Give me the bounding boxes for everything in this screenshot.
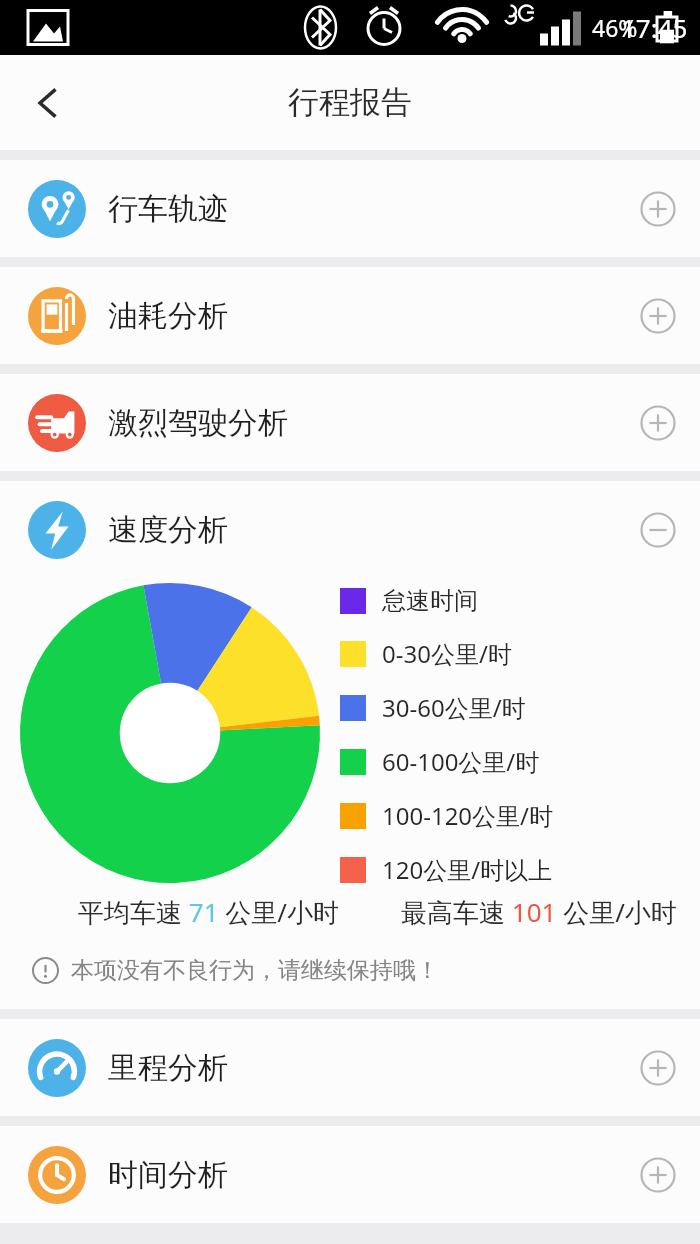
other: Expand bbox=[640, 298, 676, 334]
button[interactable]: 速度分析 bbox=[0, 481, 700, 578]
button[interactable]: 里程分析 bbox=[0, 1019, 700, 1116]
other: Expand bbox=[640, 191, 676, 227]
staticText: 里程分析 bbox=[108, 1049, 228, 1087]
staticText: 行程报告 bbox=[288, 83, 412, 122]
staticText: 平均车速 71 公里/小时 bbox=[78, 894, 339, 930]
staticText: 46% bbox=[592, 12, 638, 43]
button[interactable]: 激烈驾驶分析 bbox=[0, 374, 700, 471]
button[interactable]: Back bbox=[14, 68, 84, 138]
button[interactable]: 行车轨迹 bbox=[0, 160, 700, 257]
other: Collapse bbox=[640, 512, 676, 548]
staticText: 100-120公里/时 bbox=[382, 799, 554, 832]
staticText: 怠速时间 bbox=[382, 586, 478, 616]
staticText: 本项没有不良行为，请继续保持哦！ bbox=[71, 956, 439, 985]
staticText: 速度分析 bbox=[108, 511, 228, 549]
other: Expand bbox=[640, 1050, 676, 1086]
staticText: 时间分析 bbox=[108, 1156, 228, 1194]
staticText: 60-100公里/时 bbox=[382, 745, 540, 778]
staticText: 120公里/时以上 bbox=[382, 853, 553, 886]
staticText: 油耗分析 bbox=[108, 297, 228, 335]
staticText: 30-60公里/时 bbox=[382, 691, 526, 724]
staticText: 最高车速 101 公里/小时 bbox=[401, 894, 677, 930]
button[interactable]: 时间分析 bbox=[0, 1126, 700, 1223]
staticText: 0-30公里/时 bbox=[382, 637, 512, 670]
staticText: 17:45 bbox=[621, 10, 688, 45]
staticText: 行车轨迹 bbox=[108, 190, 228, 228]
button[interactable]: 油耗分析 bbox=[0, 267, 700, 364]
other: Expand bbox=[640, 405, 676, 441]
staticText: 激烈驾驶分析 bbox=[108, 404, 288, 442]
other: Expand bbox=[640, 1157, 676, 1193]
